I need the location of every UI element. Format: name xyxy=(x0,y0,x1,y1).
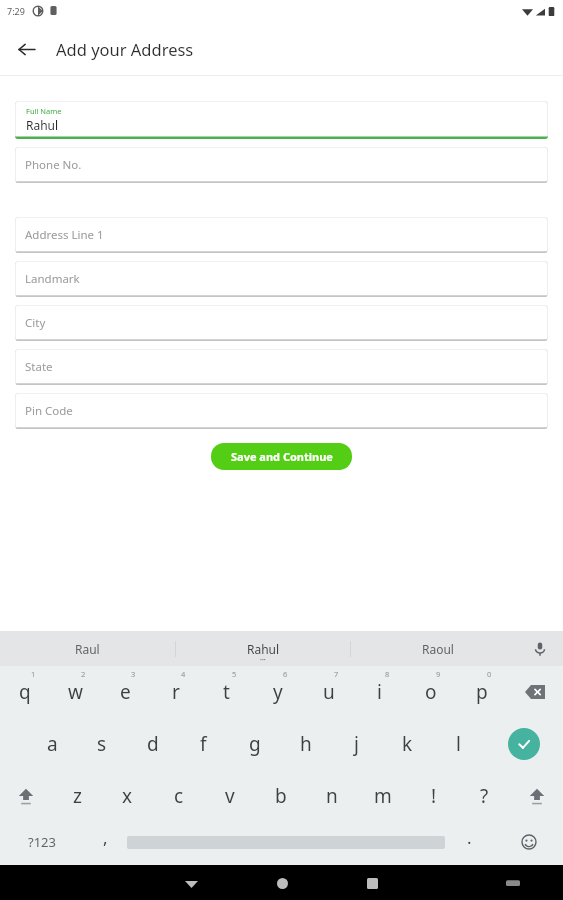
staticText: p xyxy=(476,679,488,705)
staticText: 9 xyxy=(436,669,441,679)
button[interactable]: y xyxy=(252,666,303,718)
staticText: State xyxy=(25,359,53,375)
staticText: 2 xyxy=(81,669,86,679)
button[interactable]: n xyxy=(306,770,357,822)
staticText: m xyxy=(374,783,392,809)
button[interactable]: Phone No. xyxy=(15,147,548,183)
staticText: d xyxy=(147,731,159,757)
staticText: Address Line 1 xyxy=(25,227,104,243)
button[interactable]: q xyxy=(0,666,50,718)
staticText: 8 xyxy=(385,669,390,679)
staticText: b xyxy=(275,783,287,809)
staticText: Full Name xyxy=(26,106,62,116)
staticText: ! xyxy=(431,783,437,809)
staticText: t xyxy=(223,679,230,705)
button[interactable]: f xyxy=(178,718,229,770)
staticText: c xyxy=(174,783,184,809)
staticText: q xyxy=(19,679,31,705)
button[interactable]: Raoul xyxy=(351,631,525,666)
button[interactable]: Shift xyxy=(510,770,563,822)
button[interactable]: c xyxy=(153,770,204,822)
staticText: Rahul xyxy=(247,641,280,657)
button[interactable]: h xyxy=(280,718,331,770)
staticText: z xyxy=(73,783,82,809)
button[interactable]: . xyxy=(445,822,494,862)
button[interactable]: Save and Continue xyxy=(211,443,352,470)
button[interactable]: p xyxy=(456,666,507,718)
button[interactable]: v xyxy=(204,770,255,822)
staticText: Raoul xyxy=(422,641,454,657)
staticText: w xyxy=(68,679,83,705)
button[interactable]: Voice input xyxy=(528,637,552,661)
button[interactable]: Shift xyxy=(0,770,52,822)
staticText: . xyxy=(467,826,472,849)
staticText: Save and Continue xyxy=(231,449,333,464)
button[interactable]: City xyxy=(15,305,548,341)
button[interactable]: e xyxy=(100,666,150,718)
staticText: 3 xyxy=(131,669,136,679)
button[interactable]: Home xyxy=(267,868,297,898)
button[interactable]: , xyxy=(84,822,127,862)
button[interactable]: x xyxy=(102,770,153,822)
button[interactable]: Back xyxy=(12,35,40,63)
button[interactable]: a xyxy=(27,718,77,770)
button[interactable]: ! xyxy=(408,770,459,822)
staticText: ? xyxy=(480,783,489,809)
button[interactable]: t xyxy=(201,666,252,718)
button[interactable]: Pin Code xyxy=(15,393,548,429)
button[interactable]: Hide keyboard xyxy=(176,868,206,898)
staticText: v xyxy=(225,783,235,809)
staticText: 7 xyxy=(334,669,339,679)
staticText: e xyxy=(120,679,131,705)
button[interactable]: ? xyxy=(459,770,510,822)
staticText: h xyxy=(300,731,312,757)
button[interactable]: Recents xyxy=(357,868,387,898)
button[interactable]: Landmark xyxy=(15,261,548,297)
staticText: Phone No. xyxy=(25,157,82,173)
button[interactable]: Raul xyxy=(0,631,175,666)
staticText: g xyxy=(249,731,261,757)
staticText: Pin Code xyxy=(25,403,73,419)
button[interactable]: State xyxy=(15,349,548,385)
staticText: , xyxy=(103,826,108,849)
staticText: Landmark xyxy=(25,271,80,287)
staticText: r xyxy=(172,679,180,705)
button[interactable]: Space xyxy=(127,822,445,862)
staticText: 0 xyxy=(487,669,492,679)
button[interactable]: Rahul xyxy=(176,631,350,666)
button[interactable]: Switch keyboard xyxy=(498,868,528,898)
button[interactable]: g xyxy=(229,718,280,770)
button[interactable]: Full Name xyxy=(15,101,548,139)
staticText: j xyxy=(354,731,359,757)
button[interactable]: u xyxy=(303,666,354,718)
staticText: 7:29 xyxy=(7,5,25,17)
staticText: 6 xyxy=(283,669,288,679)
button[interactable]: ?123 xyxy=(0,822,84,862)
button[interactable]: i xyxy=(354,666,405,718)
staticText: Rahul xyxy=(26,117,59,133)
staticText: ••• xyxy=(260,657,266,664)
staticText: a xyxy=(47,731,58,757)
button[interactable]: j xyxy=(331,718,382,770)
staticText: ?123 xyxy=(28,833,56,851)
button[interactable]: o xyxy=(405,666,456,718)
staticText: l xyxy=(456,731,461,757)
button[interactable]: Emoji xyxy=(494,822,563,862)
staticText: u xyxy=(323,679,335,705)
staticText: 1 xyxy=(31,669,36,679)
button[interactable]: d xyxy=(127,718,178,770)
staticText: City xyxy=(25,315,46,331)
button[interactable]: Enter xyxy=(484,718,563,770)
button[interactable]: w xyxy=(50,666,100,718)
button[interactable]: k xyxy=(382,718,433,770)
staticText: y xyxy=(273,679,283,705)
button[interactable]: l xyxy=(433,718,484,770)
button[interactable]: z xyxy=(52,770,102,822)
button[interactable]: m xyxy=(357,770,408,822)
button[interactable]: b xyxy=(255,770,306,822)
button[interactable]: r xyxy=(150,666,201,718)
button[interactable]: Address Line 1 xyxy=(15,217,548,253)
staticText: Add your Address xyxy=(56,38,194,60)
button[interactable]: Backspace xyxy=(507,666,563,718)
button[interactable]: s xyxy=(77,718,127,770)
